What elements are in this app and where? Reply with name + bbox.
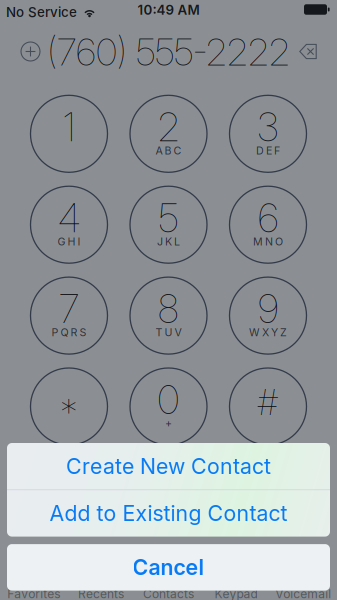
staticText: (760) 555-2222 [47, 29, 290, 75]
button[interactable]: Keypad [202, 585, 270, 600]
button[interactable]: Contacts [135, 585, 202, 600]
button[interactable]: Add number [20, 41, 41, 62]
button[interactable]: Favorites [0, 585, 67, 600]
staticText: GHI [57, 235, 80, 248]
button[interactable]: ∗ [30, 368, 107, 445]
button[interactable]: 9 [229, 277, 306, 354]
button[interactable]: 6 [229, 186, 306, 263]
staticText: Create New Contact [66, 453, 271, 479]
staticText: Favorites [7, 587, 60, 600]
staticText: JKL [157, 235, 180, 248]
button[interactable]: 0 [130, 368, 207, 445]
button[interactable]: Recents [67, 585, 135, 600]
staticText: MNO [253, 235, 283, 248]
staticText: DEF [256, 144, 280, 157]
staticText: Contacts [143, 587, 194, 600]
button[interactable]: 2 [130, 95, 207, 172]
button[interactable]: 7 [30, 277, 107, 354]
staticText: 5 [158, 195, 178, 241]
staticText: 4 [58, 195, 80, 241]
button[interactable]: 5 [130, 186, 207, 263]
button[interactable]: Create New Contact [7, 443, 330, 489]
staticText: 6 [258, 195, 278, 241]
staticText: 1 [63, 104, 75, 151]
staticText: Voicemail [275, 587, 331, 600]
button[interactable]: 8 [130, 277, 207, 354]
staticText: PQRS [51, 326, 86, 339]
staticText: Cancel [132, 554, 204, 580]
staticText: 0 [157, 376, 179, 423]
staticText: Add to Existing Contact [49, 500, 287, 526]
staticText: + [165, 417, 172, 430]
button[interactable]: 3 [229, 95, 306, 172]
staticText: 10:49 AM [137, 2, 199, 18]
staticText: # [257, 381, 278, 423]
staticText: WXYZ [249, 326, 287, 339]
button[interactable]: Delete [298, 41, 319, 62]
staticText: Keypad [214, 587, 257, 600]
button[interactable]: # [229, 368, 306, 445]
staticText: 8 [158, 286, 179, 332]
button[interactable]: Add to Existing Contact [7, 490, 330, 537]
staticText: 9 [258, 286, 278, 332]
staticText: 3 [257, 104, 278, 151]
button[interactable]: 1 [30, 95, 107, 172]
button[interactable]: Voicemail [270, 585, 337, 600]
button[interactable]: 4 [30, 186, 107, 263]
staticText: Recents [78, 587, 124, 600]
staticText: No Service [6, 4, 77, 20]
staticText: 7 [59, 286, 79, 332]
staticText: TUV [155, 326, 181, 339]
staticText: 2 [158, 104, 179, 151]
button[interactable]: Cancel [7, 544, 330, 591]
staticText: ABC [155, 144, 181, 157]
staticText: ∗ [59, 387, 79, 424]
